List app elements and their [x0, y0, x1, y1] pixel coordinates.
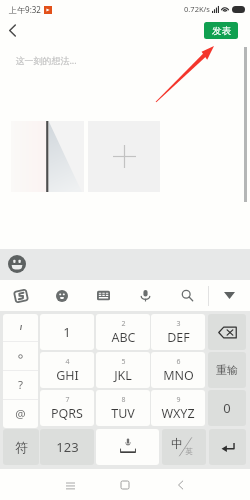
staticText: 上午9:32	[9, 4, 41, 15]
button[interactable]: Sogou input	[0, 280, 41, 311]
staticText: 123	[56, 438, 79, 456]
staticText: 英	[185, 447, 193, 456]
staticText: 7	[65, 395, 70, 405]
button[interactable]: @	[3, 400, 38, 428]
staticText: DEF	[167, 329, 190, 346]
button[interactable]: 4	[40, 352, 94, 388]
button[interactable]: Enter	[209, 429, 246, 465]
staticText: 5	[121, 357, 126, 367]
staticText: 重输	[216, 363, 238, 377]
button[interactable]: 6	[151, 352, 205, 388]
button[interactable]: Recents	[57, 472, 83, 498]
button[interactable]: 3	[151, 314, 205, 350]
button[interactable]: Home	[112, 472, 138, 498]
button[interactable]: 中	[162, 429, 206, 465]
button[interactable]: 0	[208, 390, 246, 426]
staticText: PQRS	[51, 405, 83, 422]
button[interactable]: Expression	[41, 280, 82, 311]
staticText: 2	[121, 319, 126, 329]
staticText: JKL	[114, 367, 132, 384]
button[interactable]: ?	[3, 371, 38, 399]
button[interactable]: 符	[3, 429, 39, 465]
button[interactable]: Back	[167, 472, 193, 498]
button[interactable]: Hide keyboard	[208, 280, 250, 311]
button[interactable]: 发表	[204, 22, 238, 39]
staticText: ABC	[111, 329, 136, 346]
staticText: 发表	[212, 25, 231, 37]
button[interactable]: 1	[40, 314, 94, 350]
staticText: 8	[121, 395, 126, 405]
button[interactable]: 5	[96, 352, 150, 388]
staticText: GHI	[56, 367, 79, 384]
staticText: 符	[15, 439, 28, 455]
button[interactable]: Emoji	[8, 255, 26, 273]
staticText: 6	[176, 357, 181, 367]
button[interactable]: Back	[2, 20, 22, 40]
staticText: 0	[223, 399, 231, 417]
button[interactable]: 8	[96, 390, 150, 426]
staticText: @	[15, 406, 26, 422]
staticText: 9	[176, 395, 181, 405]
button[interactable]: Keyboard layout	[82, 280, 124, 311]
button[interactable]: Search	[166, 280, 208, 311]
staticText: 这一刻的想法...	[15, 54, 77, 66]
button[interactable]: 9	[151, 390, 205, 426]
staticText: WXYZ	[161, 405, 195, 422]
button[interactable]: Space / voice input	[96, 429, 159, 465]
staticText: 3	[176, 319, 181, 329]
button[interactable]	[3, 314, 38, 341]
staticText: 4	[65, 357, 70, 367]
staticText: 中	[171, 436, 183, 451]
button[interactable]: Add photo	[88, 121, 160, 192]
staticText: 0.72K/s	[184, 4, 210, 14]
staticText: MNO	[163, 367, 194, 384]
button[interactable]: Voice	[124, 280, 166, 311]
button[interactable]: 2	[96, 314, 150, 350]
button[interactable]: 重输	[208, 352, 246, 388]
staticText: 1	[63, 323, 71, 341]
button[interactable]: 7	[40, 390, 94, 426]
staticText: TUV	[111, 405, 135, 422]
button[interactable]: 123	[40, 429, 94, 465]
button[interactable]	[3, 342, 38, 370]
button[interactable]: Backspace	[208, 314, 246, 350]
staticText: ?	[18, 377, 23, 393]
